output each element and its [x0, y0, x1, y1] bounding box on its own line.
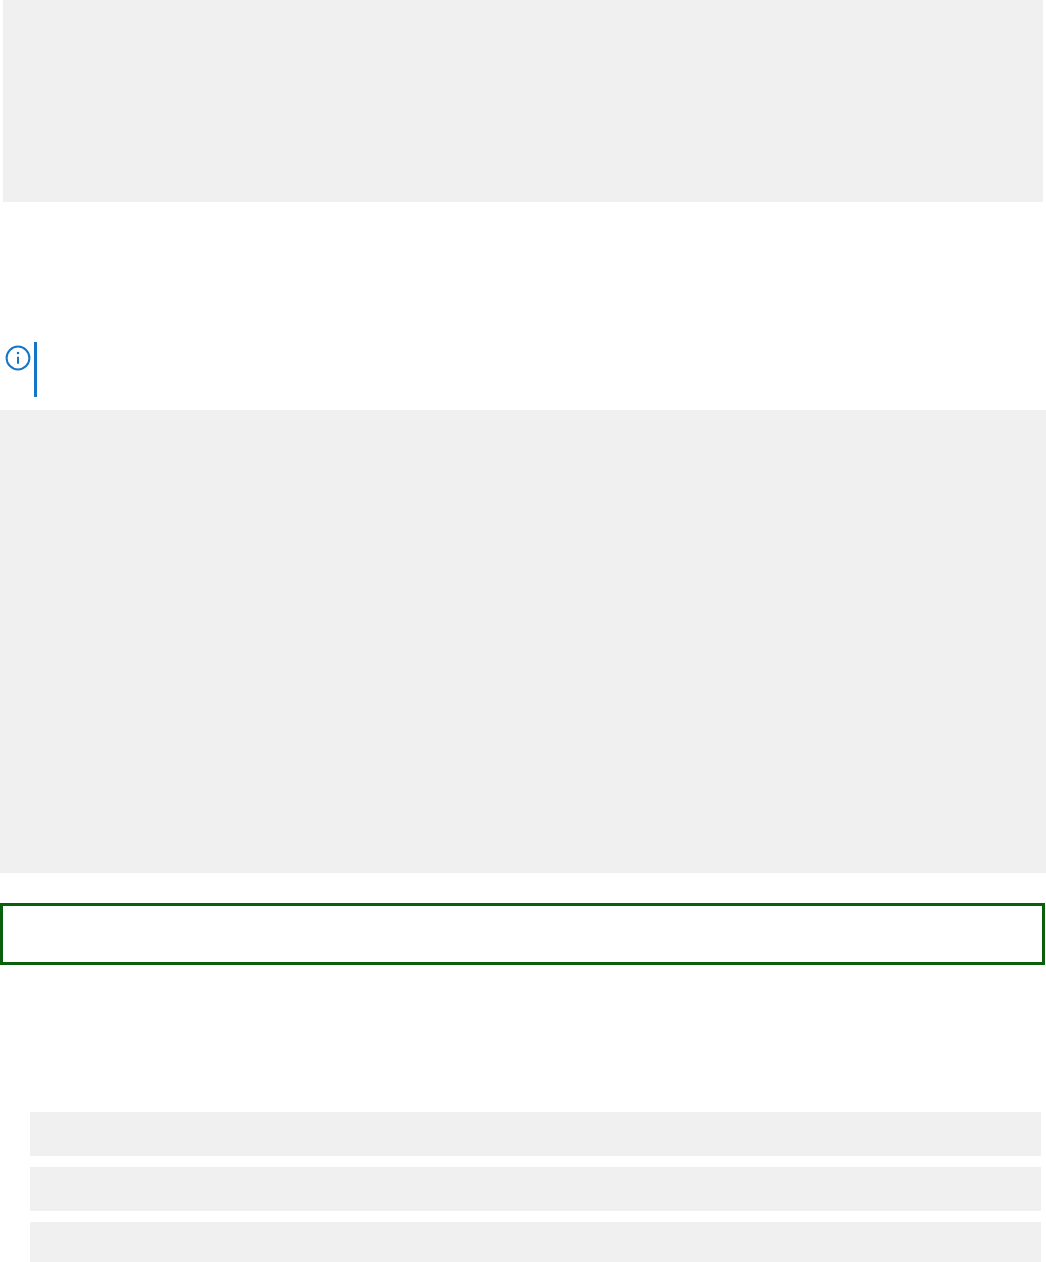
button[interactable] — [0, 903, 1045, 965]
button[interactable]: Information — [0, 342, 1046, 410]
other: Information — [5, 345, 33, 371]
